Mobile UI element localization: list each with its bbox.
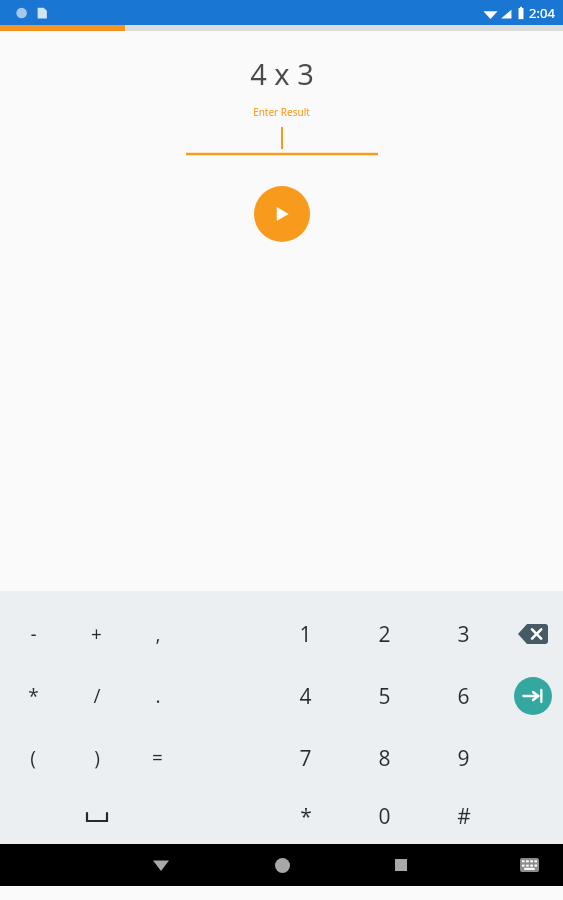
staticText: 5 — [378, 682, 391, 711]
button[interactable]: / — [66, 665, 127, 727]
button[interactable]: * — [266, 789, 345, 844]
button[interactable] — [186, 125, 378, 156]
button[interactable]: Recents — [381, 845, 421, 885]
button[interactable]: 0 — [345, 789, 424, 844]
button[interactable]: 3 — [424, 603, 503, 665]
button[interactable]: Change keyboard — [511, 847, 547, 883]
button[interactable]: 7 — [266, 727, 345, 789]
staticText: 9 — [457, 744, 470, 773]
staticText: Enter Result — [253, 105, 310, 119]
staticText: = — [152, 745, 163, 771]
button[interactable]: # — [424, 789, 503, 844]
button[interactable]: + — [66, 603, 127, 665]
staticText: ) — [94, 745, 100, 771]
staticText: # — [457, 802, 471, 831]
staticText: 7 — [299, 744, 312, 773]
staticText: + — [91, 621, 102, 647]
button[interactable]: ) — [66, 727, 127, 789]
staticText: 4 — [299, 682, 312, 711]
staticText: 2:04 — [529, 4, 555, 22]
button[interactable]: 6 — [424, 665, 503, 727]
staticText: - — [30, 621, 37, 647]
button[interactable]: 8 — [345, 727, 424, 789]
button[interactable]: ( — [0, 727, 66, 789]
staticText: , — [155, 621, 161, 647]
staticText: * — [28, 683, 39, 709]
staticText: 6 — [457, 682, 470, 711]
button[interactable]: 4 — [266, 665, 345, 727]
button[interactable]: Play — [254, 186, 310, 242]
button[interactable]: Enter — [514, 677, 552, 715]
button[interactable]: = — [127, 727, 188, 789]
button[interactable]: Space — [66, 789, 127, 844]
staticText: * — [300, 802, 312, 831]
button[interactable]: 9 — [424, 727, 503, 789]
staticText: 3 — [457, 620, 470, 649]
staticText: 2 — [378, 620, 391, 649]
staticText: / — [93, 683, 101, 709]
button[interactable]: Back — [141, 845, 181, 885]
staticText: 4 x 3 — [250, 54, 314, 93]
button[interactable]: Backspace — [516, 622, 550, 646]
staticText: . — [155, 683, 161, 709]
button[interactable]: Home — [262, 845, 302, 885]
staticText: 1 — [299, 620, 312, 649]
button[interactable]: 1 — [266, 603, 345, 665]
button[interactable]: 5 — [345, 665, 424, 727]
button[interactable]: . — [127, 665, 188, 727]
button[interactable]: * — [0, 665, 66, 727]
button[interactable]: - — [0, 603, 66, 665]
staticText: ( — [30, 745, 36, 771]
staticText: 0 — [378, 802, 391, 831]
button[interactable]: 2 — [345, 603, 424, 665]
staticText: 8 — [378, 744, 391, 773]
button[interactable]: , — [127, 603, 188, 665]
